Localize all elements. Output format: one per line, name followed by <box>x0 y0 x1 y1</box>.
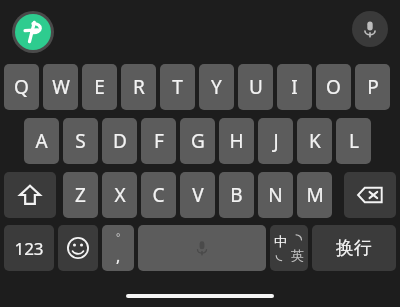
button[interactable]: E <box>82 64 117 110</box>
staticText: D <box>113 128 127 154</box>
staticText: M <box>306 182 324 208</box>
staticText: 英 <box>291 247 304 263</box>
staticText: T <box>172 74 183 100</box>
button[interactable]: H <box>219 118 254 164</box>
staticText: H <box>229 128 244 154</box>
staticText: O <box>326 74 341 100</box>
staticText: A <box>35 128 48 154</box>
staticText: B <box>230 182 243 208</box>
button[interactable]: Z <box>63 172 98 218</box>
button[interactable]: M <box>297 172 332 218</box>
button[interactable]: J <box>258 118 293 164</box>
staticText: F <box>154 128 164 154</box>
button[interactable]: 123 <box>4 225 54 271</box>
button[interactable]: D <box>102 118 137 164</box>
button[interactable]: C <box>141 172 176 218</box>
staticText: J <box>273 128 279 154</box>
staticText: L <box>349 128 359 154</box>
button[interactable]: I <box>277 64 312 110</box>
button[interactable]: R <box>121 64 156 110</box>
staticText: 换行 <box>336 237 372 260</box>
button[interactable]: K <box>297 118 332 164</box>
button[interactable]: P <box>355 64 390 110</box>
button[interactable]: Voice input <box>352 11 388 47</box>
button[interactable]: Switch Chinese English <box>270 225 308 271</box>
button[interactable]: O <box>316 64 351 110</box>
button[interactable]: Backspace <box>344 172 396 218</box>
button[interactable]: L <box>336 118 371 164</box>
button[interactable]: Y <box>199 64 234 110</box>
button[interactable]: F <box>141 118 176 164</box>
staticText: Q <box>14 74 29 100</box>
staticText: Y <box>211 74 222 100</box>
button[interactable]: Shift <box>4 172 56 218</box>
button[interactable]: X <box>102 172 137 218</box>
staticText: R <box>133 74 145 100</box>
button[interactable]: N <box>258 172 293 218</box>
staticText: K <box>309 128 321 154</box>
staticText: X <box>114 182 126 208</box>
button[interactable]: Input method logo <box>12 11 54 53</box>
button[interactable]: V <box>180 172 215 218</box>
staticText: 123 <box>14 237 44 260</box>
button[interactable]: T <box>160 64 195 110</box>
button[interactable]: W <box>43 64 78 110</box>
staticText: , <box>116 245 121 267</box>
staticText: W <box>52 74 70 100</box>
button[interactable]: B <box>219 172 254 218</box>
staticText: E <box>94 74 105 100</box>
button[interactable]: 换行 <box>312 225 396 271</box>
staticText: V <box>192 182 204 208</box>
staticText: N <box>268 182 283 208</box>
staticText: ° <box>116 230 121 244</box>
button[interactable]: Comma and period <box>102 225 134 271</box>
staticText: I <box>291 74 298 100</box>
button[interactable]: A <box>24 118 59 164</box>
button[interactable]: U <box>238 64 273 110</box>
staticText: G <box>191 128 205 154</box>
staticText: U <box>249 74 263 100</box>
staticText: Z <box>75 182 86 208</box>
staticText: 中 <box>274 233 287 249</box>
staticText: P <box>367 74 379 100</box>
button[interactable]: G <box>180 118 215 164</box>
staticText: S <box>75 128 86 154</box>
button[interactable]: Emoji <box>58 225 98 271</box>
button[interactable]: S <box>63 118 98 164</box>
staticText: C <box>152 182 165 208</box>
button[interactable]: Q <box>4 64 39 110</box>
button[interactable]: Space <box>138 225 266 271</box>
